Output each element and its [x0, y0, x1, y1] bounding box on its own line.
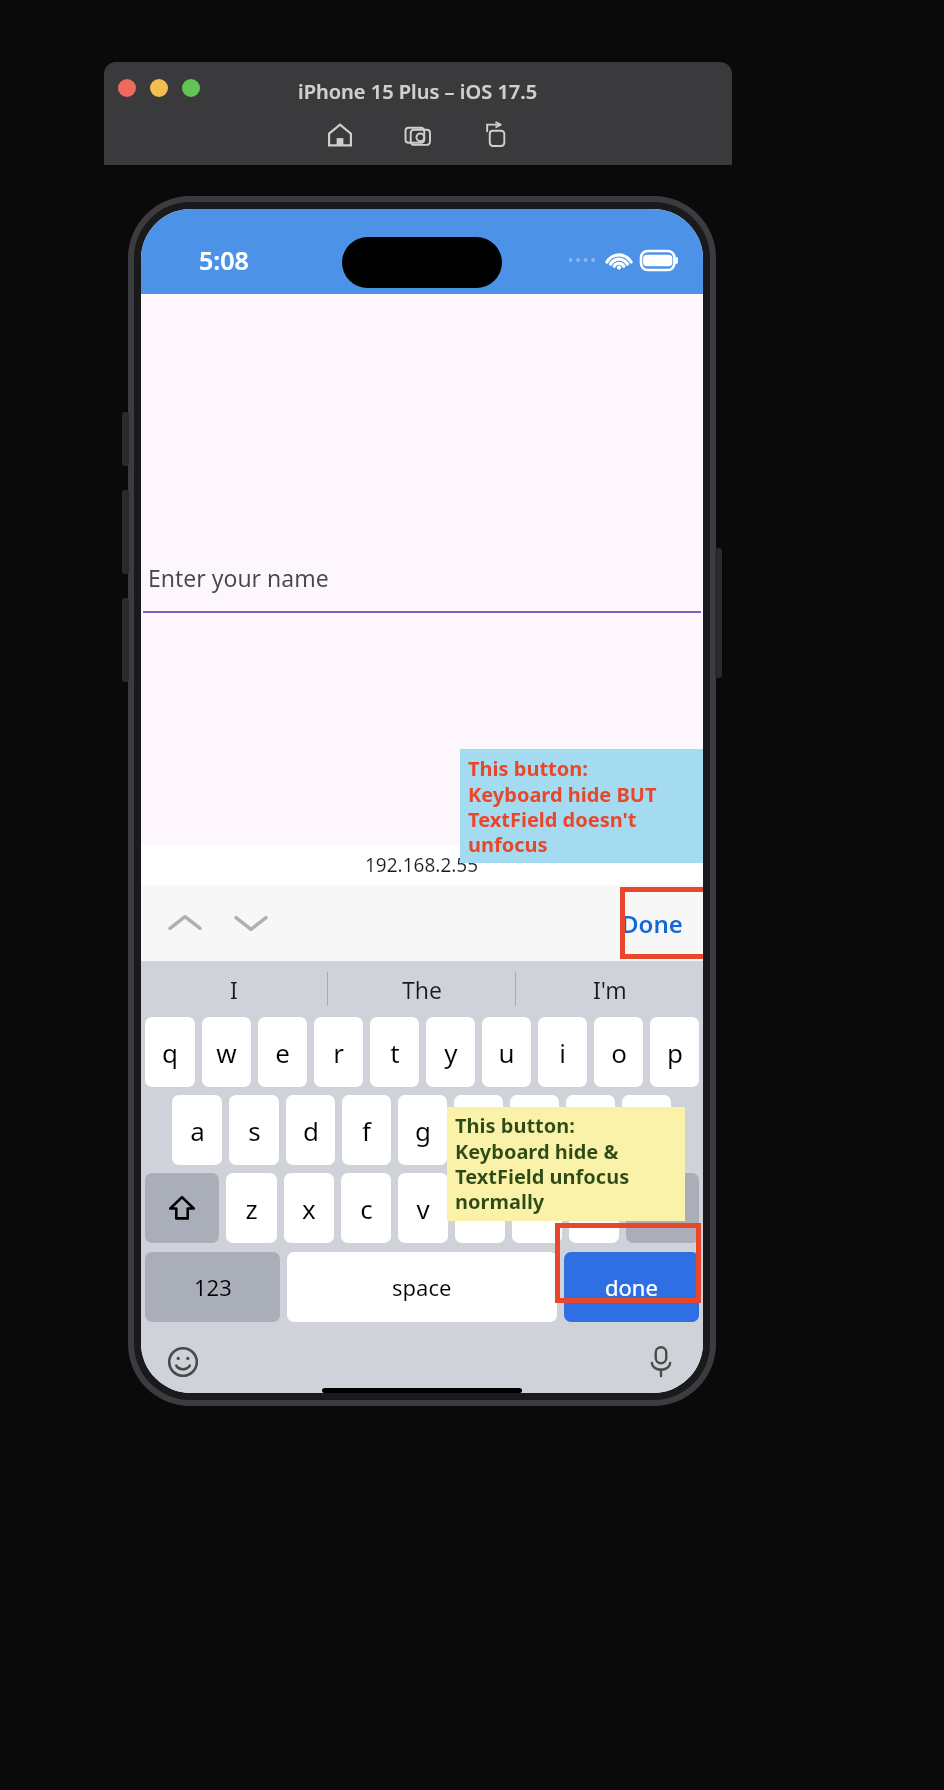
button[interactable]: s	[229, 1095, 279, 1165]
button[interactable]: Done	[621, 907, 683, 940]
button[interactable]: Dictation	[639, 1340, 683, 1384]
button[interactable]: 123	[145, 1252, 280, 1322]
staticText: t	[390, 1035, 400, 1070]
staticText: This button: Keyboard hide & TextField u…	[455, 1112, 630, 1214]
staticText: v	[416, 1191, 430, 1226]
staticText: Enter your name	[148, 562, 329, 593]
button[interactable]: r	[314, 1017, 363, 1087]
button[interactable]: t	[370, 1017, 419, 1087]
button[interactable]: Home	[321, 116, 359, 154]
staticText: This button: Keyboard hide BUT TextField…	[468, 755, 657, 857]
button[interactable]: x	[284, 1173, 334, 1243]
staticText: 192.168.2.55	[365, 852, 479, 878]
button[interactable]: l	[622, 1095, 671, 1165]
button[interactable]: z	[226, 1173, 277, 1243]
staticText: p	[667, 1035, 683, 1070]
staticText: h	[470, 1113, 487, 1148]
button[interactable]: f	[342, 1095, 391, 1165]
staticText: done	[605, 1272, 658, 1302]
button[interactable]: y	[426, 1017, 475, 1087]
staticText: I	[230, 974, 238, 1005]
staticText: space	[392, 1272, 452, 1302]
staticText: b	[472, 1191, 488, 1226]
staticText: a	[190, 1113, 205, 1148]
staticText: r	[333, 1035, 344, 1070]
button[interactable]: m	[569, 1173, 619, 1243]
staticText: I'm	[593, 974, 627, 1005]
button[interactable]: Window control	[118, 79, 136, 97]
button[interactable]: Screenshot	[399, 116, 437, 154]
staticText: f	[362, 1113, 371, 1148]
button[interactable]: Next field	[229, 901, 273, 945]
staticText: u	[498, 1035, 515, 1070]
staticText: g	[415, 1113, 431, 1148]
staticText: k	[584, 1113, 598, 1148]
button[interactable]: b	[455, 1173, 505, 1243]
button[interactable]: h	[454, 1095, 503, 1165]
button[interactable]: The	[328, 961, 515, 1017]
button[interactable]: i	[538, 1017, 587, 1087]
staticText: q	[162, 1035, 178, 1070]
staticText: s	[248, 1113, 261, 1148]
staticText: z	[245, 1191, 258, 1226]
button[interactable]: Enter your name	[143, 562, 701, 613]
staticText: d	[303, 1113, 319, 1148]
staticText: 5:08	[199, 243, 249, 277]
button[interactable]: n	[512, 1173, 562, 1243]
button[interactable]: w	[202, 1017, 251, 1087]
staticText: i	[559, 1035, 566, 1070]
button[interactable]: a	[172, 1095, 222, 1165]
button[interactable]: Rotate	[477, 116, 515, 154]
staticText: The	[402, 974, 442, 1005]
button[interactable]: I'm	[516, 961, 703, 1017]
button[interactable]: q	[145, 1017, 195, 1087]
button[interactable]: v	[398, 1173, 448, 1243]
staticText: c	[360, 1191, 373, 1226]
staticText: Done	[621, 907, 683, 940]
button[interactable]: c	[341, 1173, 391, 1243]
staticText: iPhone 15 Plus – iOS 17.5	[298, 78, 538, 105]
button[interactable]: k	[566, 1095, 615, 1165]
staticText: e	[275, 1035, 290, 1070]
button[interactable]: o	[594, 1017, 643, 1087]
button[interactable]: Emoji	[161, 1340, 205, 1384]
staticText: x	[302, 1191, 316, 1226]
button[interactable]: space	[287, 1252, 557, 1322]
staticText: y	[444, 1035, 458, 1070]
button[interactable]: e	[258, 1017, 307, 1087]
button[interactable]: Window control	[150, 79, 168, 97]
button[interactable]: u	[482, 1017, 531, 1087]
button[interactable]: Backspace	[626, 1173, 699, 1243]
staticText: w	[216, 1035, 237, 1070]
button[interactable]: p	[650, 1017, 699, 1087]
staticText: m	[582, 1191, 607, 1226]
staticText: n	[529, 1191, 546, 1226]
button[interactable]: d	[286, 1095, 335, 1165]
button[interactable]: g	[398, 1095, 447, 1165]
button[interactable]: Shift	[145, 1173, 219, 1243]
button[interactable]: I	[141, 961, 327, 1017]
staticText: j	[531, 1113, 538, 1148]
button[interactable]: j	[510, 1095, 559, 1165]
button[interactable]: Window control	[182, 79, 200, 97]
staticText: 123	[194, 1272, 232, 1302]
button[interactable]: Previous field	[163, 901, 207, 945]
button[interactable]: done	[564, 1252, 699, 1322]
staticText: o	[611, 1035, 627, 1070]
